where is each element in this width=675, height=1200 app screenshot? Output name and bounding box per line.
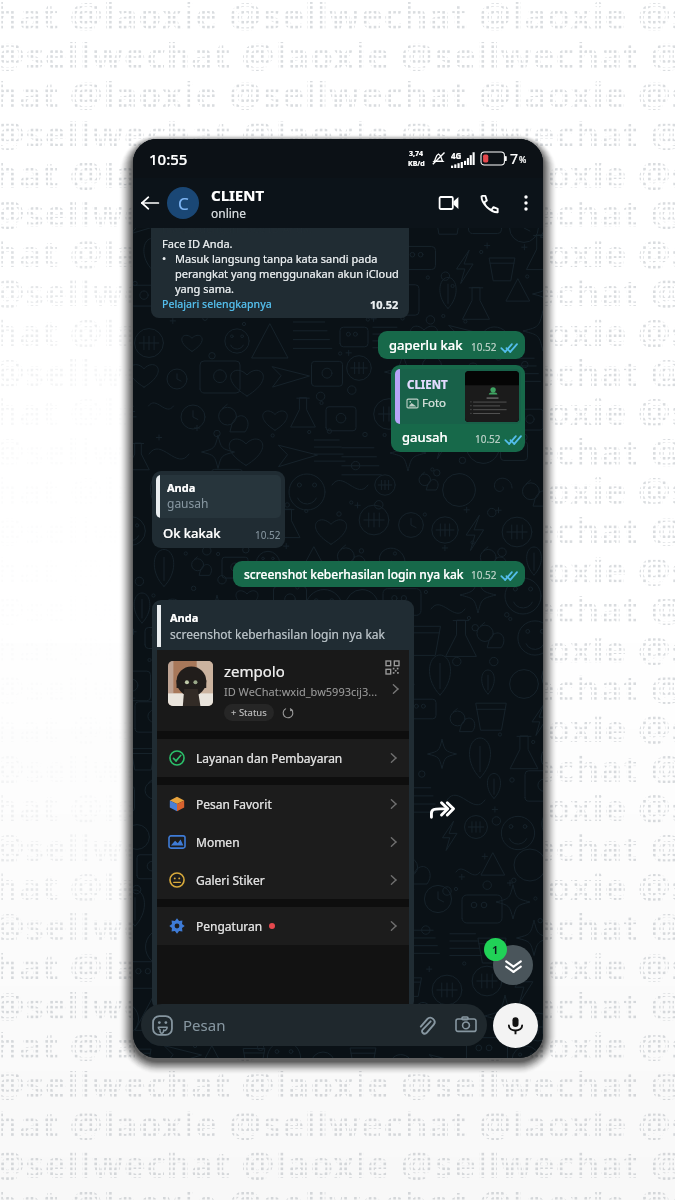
button[interactable]: CLIENT — [391, 365, 525, 452]
staticText: + Status — [231, 706, 267, 719]
staticText: 3,74 — [409, 149, 424, 159]
button[interactable]: Galeri Stiker — [169, 861, 397, 899]
button[interactable]: Video call — [429, 183, 469, 223]
staticText: 10.52 — [475, 432, 501, 446]
staticText: • — [162, 251, 175, 266]
button[interactable]: Anda — [152, 600, 414, 1010]
button[interactable]: + Status — [231, 706, 267, 719]
button[interactable]: screenshot keberhasilan login nya kak — [233, 561, 525, 587]
staticText: 10:55 — [149, 149, 188, 169]
button[interactable]: Voice message — [493, 1003, 538, 1048]
staticText: CLIENT — [407, 377, 448, 393]
staticText: screenshot keberhasilan login nya kak — [170, 626, 385, 642]
staticText: Layanan dan Pembayaran — [196, 750, 343, 766]
staticText: ID WeChat:wxid_bw5993cij3... — [224, 684, 378, 699]
button[interactable]: masuk dengan Face ID Anda. — [151, 228, 409, 318]
staticText: Pesan — [183, 1015, 226, 1035]
staticText: 10.52 — [255, 528, 281, 542]
button[interactable]: Back — [133, 178, 167, 228]
button[interactable]: zempolo — [168, 661, 399, 721]
button[interactable]: Layanan dan Pembayaran — [169, 739, 397, 777]
staticText: screenshot keberhasilan login nya kak — [244, 566, 464, 582]
staticText: zempolo — [224, 661, 285, 681]
staticText: Pengaturan — [196, 918, 263, 934]
button[interactable]: Pesan — [152, 1004, 476, 1046]
staticText: Face ID Anda. — [162, 236, 233, 251]
staticText: CLIENT — [211, 185, 265, 205]
staticText: Momen — [196, 834, 240, 850]
staticText: gausah — [402, 428, 448, 446]
button[interactable]: Pengaturan — [169, 907, 397, 945]
staticText: Ok kakak — [163, 524, 221, 542]
staticText: Foto — [422, 395, 447, 411]
button[interactable]: Momen — [169, 823, 397, 861]
staticText: 10.52 — [370, 297, 399, 311]
button[interactable]: More options — [509, 186, 543, 220]
staticText: 10.52 — [471, 340, 497, 354]
button[interactable]: Forward — [428, 795, 456, 823]
staticText: Galeri Stiker — [196, 872, 265, 888]
staticText: 4G — [451, 150, 462, 161]
staticText: Masuk langsung tanpa kata sandi pada per… — [175, 251, 399, 296]
staticText: 7 — [510, 149, 519, 168]
staticText: online — [211, 205, 247, 221]
button[interactable]: gaperlu kak — [378, 331, 525, 359]
button[interactable]: Pesan Favorit — [169, 785, 397, 823]
staticText: Pelajari selengkapnya — [162, 297, 272, 311]
staticText: C — [178, 192, 189, 215]
staticText: KB/d — [408, 159, 425, 169]
staticText: % — [519, 153, 527, 165]
staticText: Pesan Favorit — [196, 796, 272, 812]
button[interactable]: Anda — [152, 471, 285, 548]
button[interactable]: Voice call — [469, 183, 509, 223]
staticText: gausah — [167, 495, 209, 511]
button[interactable]: Scroll to bottom — [493, 945, 533, 985]
staticText: 1 — [492, 942, 499, 957]
staticText: gaperlu kak — [389, 336, 463, 354]
staticText: Anda — [170, 610, 199, 625]
staticText: 10.52 — [471, 568, 497, 582]
staticText: Anda — [167, 480, 196, 495]
